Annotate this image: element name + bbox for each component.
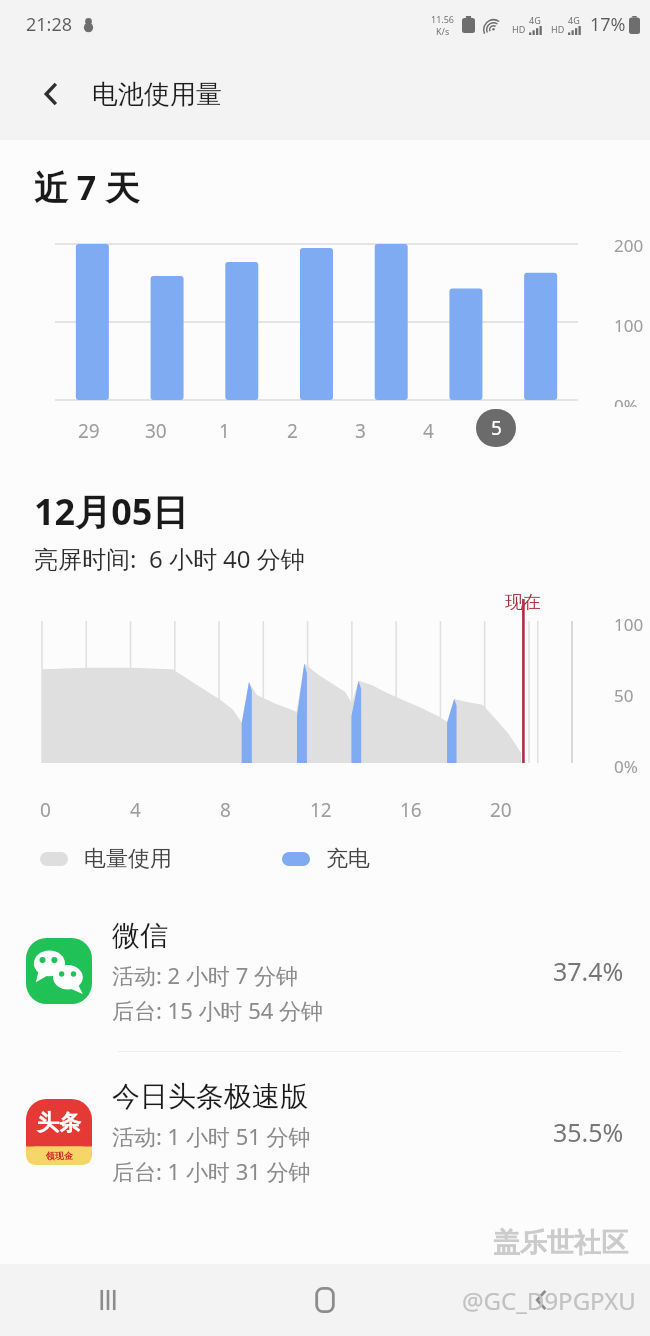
staticText: 30: [145, 418, 167, 444]
staticText: 今日头条极速版: [112, 1079, 308, 1114]
staticText: 12: [310, 797, 332, 823]
staticText: 1: [219, 418, 230, 444]
staticText: 活动: 1 小时 51 分钟: [112, 1121, 311, 1151]
staticText: 100: [614, 314, 644, 337]
button[interactable]: 微信: [0, 891, 650, 1051]
staticText: 微信: [112, 918, 168, 953]
button[interactable]: 头条: [0, 1052, 650, 1212]
staticText: 4: [423, 418, 434, 444]
staticText: 37.4%: [553, 954, 624, 988]
staticText: 200: [614, 234, 644, 257]
staticText: K/s: [436, 25, 450, 37]
staticText: 头条: [37, 1109, 81, 1137]
staticText: 29: [78, 418, 100, 444]
staticText: 0: [40, 797, 51, 823]
staticText: 16: [400, 797, 422, 823]
staticText: 8: [220, 797, 231, 823]
staticText: 盖乐世社区: [493, 1226, 628, 1260]
staticText: 100: [614, 613, 644, 636]
button[interactable]: Recents: [77, 1269, 139, 1331]
staticText: 0%: [614, 755, 638, 778]
staticText: 4G: [529, 14, 541, 26]
staticText: 21:28: [26, 12, 73, 37]
staticText: 20: [490, 797, 512, 823]
staticText: 3: [355, 418, 366, 444]
staticText: 35.5%: [553, 1115, 624, 1149]
staticText: 后台: 15 小时 54 分钟: [112, 995, 324, 1025]
staticText: 17%: [590, 12, 626, 37]
staticText: 活动: 2 小时 7 分钟: [112, 960, 298, 990]
staticText: 领现金: [46, 1150, 73, 1161]
staticText: 5: [491, 415, 502, 441]
staticText: 4: [130, 797, 141, 823]
staticText: 11.56: [431, 13, 455, 25]
staticText: 2: [287, 418, 298, 444]
staticText: 电量使用: [84, 845, 172, 873]
staticText: 电池使用量: [92, 78, 222, 111]
staticText: 50: [614, 684, 634, 707]
staticText: HD: [512, 23, 526, 35]
staticText: @GC_D9PGPXU: [462, 1284, 636, 1317]
button[interactable]: Home: [294, 1269, 356, 1331]
button[interactable]: Back: [28, 70, 76, 118]
staticText: 亮屏时间: 6 小时 40 分钟: [34, 542, 305, 575]
staticText: 近 7 天: [34, 164, 140, 210]
staticText: HD: [551, 23, 565, 35]
staticText: 12月05日: [34, 487, 189, 536]
staticText: 0%: [614, 394, 638, 407]
staticText: 现在: [505, 591, 541, 614]
staticText: 4G: [568, 14, 580, 26]
button[interactable]: Back: [511, 1269, 573, 1331]
staticText: 充电: [326, 845, 370, 873]
staticText: 后台: 1 小时 31 分钟: [112, 1156, 311, 1186]
